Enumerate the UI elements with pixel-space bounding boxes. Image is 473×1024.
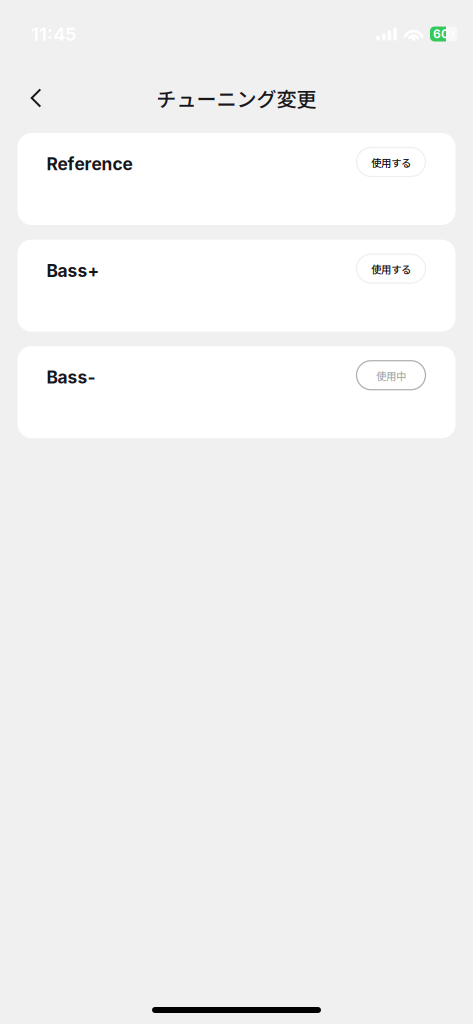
- button[interactable]: 使用中: [356, 363, 425, 392]
- staticText: Bass-: [46, 367, 95, 388]
- staticText: 使用中: [376, 368, 406, 383]
- staticText: 使用する: [371, 155, 411, 170]
- staticText: 60: [433, 27, 449, 41]
- staticText: 11:45: [31, 23, 76, 45]
- staticText: 使用する: [371, 261, 411, 277]
- staticText: Bass+: [46, 260, 99, 281]
- button[interactable]: 使用する: [356, 256, 425, 285]
- staticText: Reference: [46, 153, 132, 174]
- button[interactable]: Back: [14, 76, 58, 120]
- staticText: チューニング変更: [156, 83, 316, 112]
- button[interactable]: 使用する: [356, 149, 425, 178]
